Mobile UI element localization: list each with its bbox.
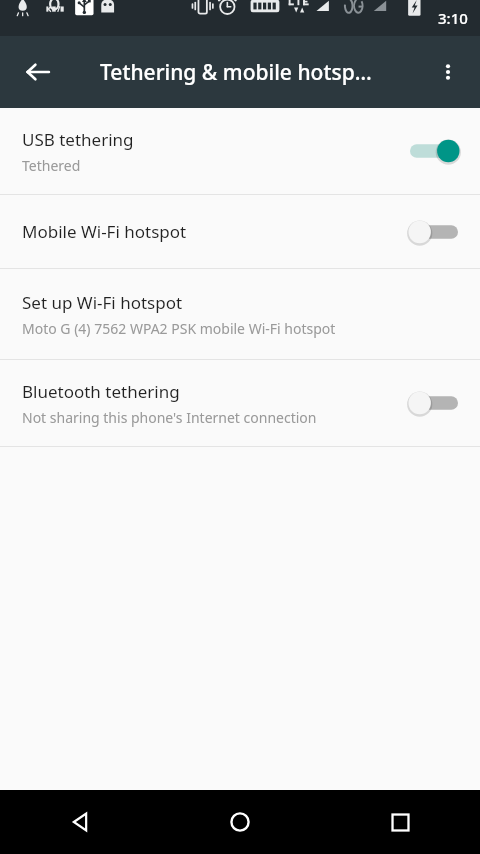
staticText: Tethering & mobile hotsp… xyxy=(100,58,372,87)
button[interactable]: Mobile Wi-Fi hotspot xyxy=(0,195,480,268)
staticText: Set up Wi-Fi hotspot xyxy=(22,291,183,314)
button[interactable]: Back xyxy=(0,790,160,854)
button[interactable]: More options xyxy=(424,48,472,96)
button[interactable]: Recent apps xyxy=(320,790,480,854)
button[interactable]: Home xyxy=(160,790,320,854)
staticText: Moto G (4) 7562 WPA2 PSK mobile Wi-Fi ho… xyxy=(22,319,336,338)
staticText: Bluetooth tethering xyxy=(22,380,180,403)
button[interactable]: Set up Wi-Fi hotspot xyxy=(0,269,480,359)
button[interactable]: Back xyxy=(14,48,62,96)
staticText: Mobile Wi-Fi hotspot xyxy=(22,220,187,243)
staticText: 3:10 xyxy=(438,8,468,28)
staticText: USB tethering xyxy=(22,128,134,151)
button[interactable]: Off xyxy=(408,212,460,252)
button[interactable]: USB tethering xyxy=(0,108,480,194)
staticText: Not sharing this phone's Internet connec… xyxy=(22,408,317,427)
button[interactable]: On xyxy=(408,131,460,171)
button[interactable]: Off xyxy=(408,383,460,423)
staticText: Tethered xyxy=(22,156,81,175)
button[interactable]: Bluetooth tethering xyxy=(0,360,480,446)
